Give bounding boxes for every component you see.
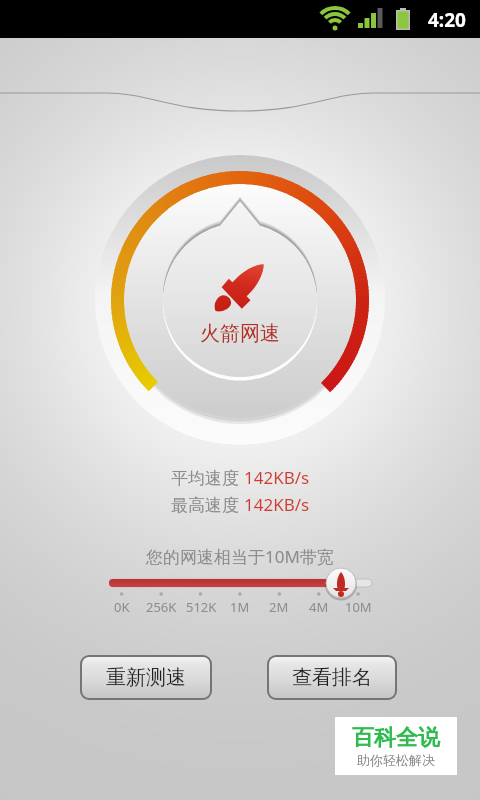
- staticText: 0K: [114, 598, 130, 616]
- staticText: 4M: [309, 598, 329, 616]
- staticText: 重新测速: [106, 665, 186, 690]
- staticText: 最高速度: [171, 493, 244, 516]
- staticText: 2M: [269, 598, 289, 616]
- staticText: 助你轻松解决: [357, 752, 435, 768]
- staticText: 4:20: [428, 7, 466, 33]
- staticText: 256K: [146, 598, 177, 616]
- staticText: 512K: [186, 598, 217, 616]
- button[interactable]: 重新测速: [82, 657, 210, 698]
- staticText: 平均速度: [171, 466, 244, 489]
- staticText: 查看排名: [292, 665, 372, 690]
- staticText: 百科全说: [352, 724, 440, 752]
- staticText: 10M: [345, 598, 372, 616]
- button[interactable]: 查看排名: [269, 657, 395, 698]
- staticText: 您的网速相当于10M带宽: [146, 545, 334, 568]
- staticText: 火箭网速: [200, 321, 280, 346]
- staticText: 1M: [230, 598, 250, 616]
- staticText: 142KB/s: [244, 493, 310, 516]
- staticText: 142KB/s: [244, 466, 310, 489]
